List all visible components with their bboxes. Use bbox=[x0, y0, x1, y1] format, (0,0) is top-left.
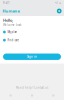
staticText: Find care bbox=[7, 38, 19, 42]
button[interactable]: My plan bbox=[3, 30, 61, 34]
button[interactable]: Plan bbox=[21, 92, 43, 98]
button[interactable]: Find care bbox=[3, 38, 61, 42]
button[interactable]: More bbox=[43, 92, 64, 98]
button[interactable]: Home bbox=[0, 92, 21, 98]
staticText: 9:41 bbox=[3, 1, 10, 5]
staticText: Humana bbox=[2, 8, 19, 14]
staticText: Hello, bbox=[3, 18, 13, 23]
button[interactable]: Profile bbox=[57, 9, 62, 13]
staticText: Welcome back bbox=[3, 23, 21, 27]
button[interactable]: Sign in bbox=[3, 53, 61, 60]
staticText: Need help? Contact us bbox=[16, 86, 48, 89]
staticText: •ıl ≡ bbox=[55, 1, 61, 5]
staticText: My plan bbox=[7, 30, 17, 34]
staticText: Sign in bbox=[27, 55, 37, 58]
